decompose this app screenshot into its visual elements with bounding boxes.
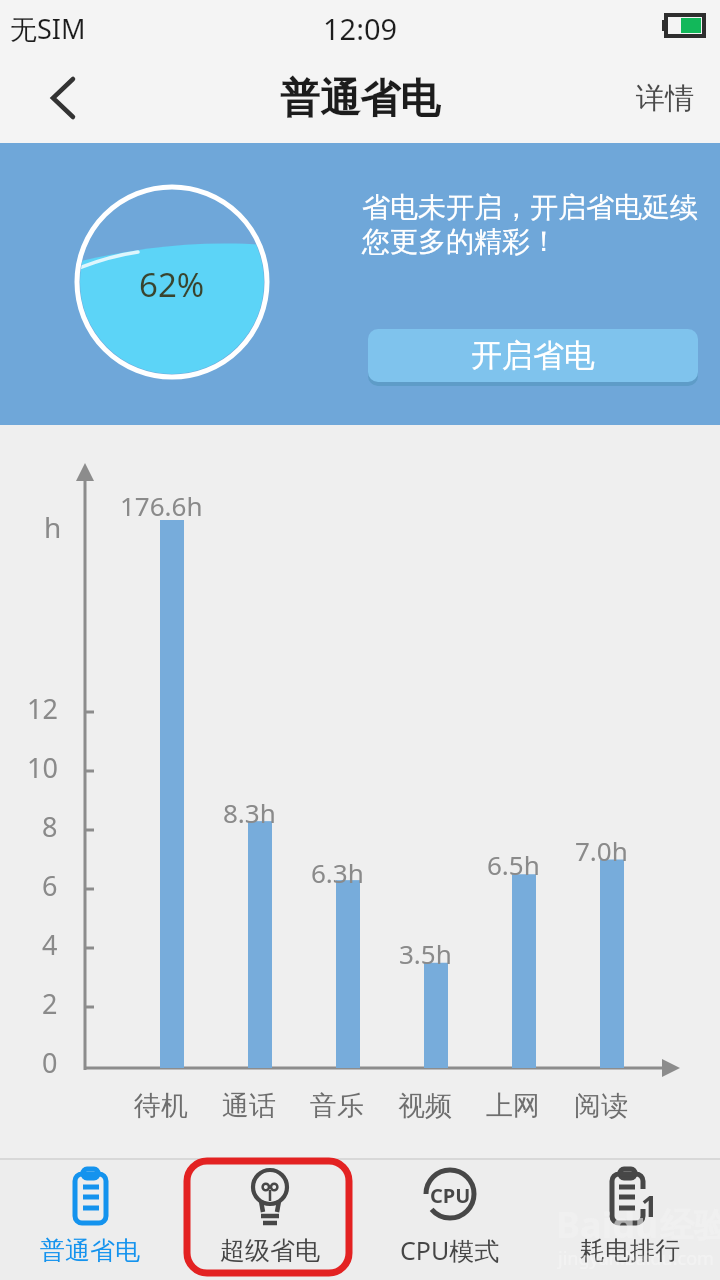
staticText: 6.3h <box>311 855 364 887</box>
button[interactable]: 1 <box>540 1160 720 1280</box>
staticText: 176.6h <box>120 488 203 520</box>
staticText: Baidu <box>556 1200 659 1249</box>
button[interactable]: CPU <box>360 1160 540 1280</box>
staticText: 8.3h <box>223 795 276 827</box>
staticText: 待机 <box>134 1089 188 1123</box>
staticText: 62% <box>139 262 205 306</box>
staticText: jingyan.baidu.com <box>558 1246 714 1271</box>
staticText: 详情 <box>636 80 694 117</box>
staticText: 6 <box>42 867 58 903</box>
staticText: 1 <box>641 1186 658 1220</box>
staticText: 8 <box>42 808 58 844</box>
staticText: 无SIM <box>10 10 86 47</box>
staticText: 音乐 <box>310 1089 364 1123</box>
button[interactable] <box>45 75 85 121</box>
staticText: 3.5h <box>399 936 452 968</box>
staticText: 经验 <box>660 1204 720 1247</box>
staticText: 上网 <box>486 1089 540 1123</box>
staticText: h <box>44 508 62 546</box>
staticText: 耗电排行 <box>580 1235 680 1266</box>
staticText: 12:09 <box>323 9 398 48</box>
staticText: 阅读 <box>574 1089 628 1123</box>
staticText: 视频 <box>398 1089 452 1123</box>
button[interactable]: 开启省电 <box>368 329 698 382</box>
staticText: 开启省电 <box>471 336 595 375</box>
staticText: 省电未开启，开启省电延续 <box>362 190 698 225</box>
button[interactable]: 普通省电 <box>0 1160 180 1280</box>
staticText: 超级省电 <box>220 1235 320 1266</box>
staticText: 您更多的精彩！ <box>362 224 558 259</box>
staticText: 2 <box>42 985 58 1021</box>
staticText: 10 <box>27 749 58 785</box>
staticText: 4 <box>42 926 58 962</box>
staticText: 通话 <box>222 1089 276 1123</box>
staticText: 7.0h <box>575 833 628 865</box>
staticText: 普通省电 <box>280 73 440 123</box>
staticText: CPU <box>430 1182 471 1209</box>
staticText: 普通省电 <box>40 1235 140 1266</box>
button[interactable]: 超级省电 <box>180 1160 360 1280</box>
staticText: 12 <box>27 690 58 726</box>
button[interactable]: 详情 <box>620 78 710 118</box>
staticText: 0 <box>42 1044 58 1080</box>
staticText: CPU模式 <box>400 1233 500 1267</box>
staticText: 6.5h <box>487 847 540 879</box>
